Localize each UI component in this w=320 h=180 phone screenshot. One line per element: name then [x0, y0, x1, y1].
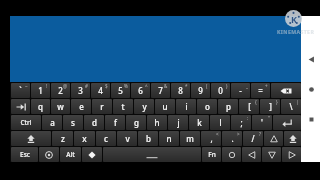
button[interactable]: a	[42, 115, 62, 130]
staticText: _	[246, 83, 248, 89]
button[interactable]: 6	[131, 83, 150, 98]
button[interactable]: l	[210, 115, 230, 130]
staticText: ,	[210, 133, 213, 144]
button[interactable]: t	[113, 99, 133, 114]
button[interactable]: 1	[31, 83, 50, 98]
button[interactable]: Arrow right	[282, 147, 301, 162]
button[interactable]: [	[239, 99, 259, 114]
button[interactable]: k	[189, 115, 209, 130]
button[interactable]: Arrow down	[262, 147, 281, 162]
staticText: ;	[240, 117, 243, 128]
staticText: Ctrl	[20, 118, 32, 127]
button[interactable]: Alt	[60, 147, 81, 162]
button[interactable]: z	[52, 131, 73, 146]
staticText: v	[125, 133, 130, 144]
button[interactable]: v	[117, 131, 137, 146]
staticText: `	[19, 85, 22, 96]
button[interactable]: ]	[260, 99, 280, 114]
staticText: )	[226, 83, 228, 89]
button[interactable]: 0	[211, 83, 230, 98]
staticText: 3	[78, 85, 83, 96]
button[interactable]: Space	[103, 147, 201, 162]
button[interactable]: w	[51, 99, 70, 114]
button[interactable]: Shift	[284, 131, 301, 146]
button[interactable]: 9	[191, 83, 210, 98]
button[interactable]: 7	[151, 83, 170, 98]
button[interactable]: Change language	[39, 147, 59, 162]
button[interactable]: Arrow left	[242, 147, 261, 162]
staticText: &	[164, 83, 168, 89]
button[interactable]: b	[138, 131, 158, 146]
staticText: 9	[198, 85, 203, 96]
button[interactable]: e	[71, 99, 91, 114]
button[interactable]: n	[159, 131, 179, 146]
staticText: [	[248, 101, 251, 112]
staticText: m	[186, 133, 194, 144]
button[interactable]: =	[251, 83, 270, 98]
staticText: ]	[269, 101, 272, 112]
staticText: h	[154, 117, 160, 128]
staticText: *	[185, 83, 188, 89]
button[interactable]: 4	[91, 83, 110, 98]
staticText: f	[114, 117, 117, 128]
staticText: p	[226, 101, 231, 112]
staticText: 8	[178, 85, 183, 96]
button[interactable]: m	[180, 131, 200, 146]
button[interactable]: '	[252, 115, 272, 130]
button[interactable]: o	[197, 99, 217, 114]
button[interactable]: j	[168, 115, 188, 130]
staticText: Alt	[66, 150, 75, 159]
button[interactable]: `	[11, 83, 30, 98]
button[interactable]: Enter	[273, 115, 301, 130]
button[interactable]: q	[31, 99, 50, 114]
staticText: K	[291, 13, 297, 25]
button[interactable]: u	[155, 99, 175, 114]
button[interactable]: p	[218, 99, 238, 114]
button[interactable]: y	[134, 99, 154, 114]
button[interactable]: Home	[305, 83, 317, 95]
button[interactable]: s	[63, 115, 83, 130]
button[interactable]: Tab	[11, 99, 30, 114]
staticText: s	[71, 117, 75, 128]
button[interactable]: r	[92, 99, 112, 114]
staticText: j	[177, 117, 180, 128]
button[interactable]: 3	[71, 83, 90, 98]
button[interactable]: 5	[111, 83, 130, 98]
button[interactable]: Search	[82, 147, 102, 162]
button[interactable]: Shift	[11, 131, 51, 146]
button[interactable]: -	[231, 83, 250, 98]
button[interactable]: d	[84, 115, 104, 130]
button[interactable]: Arrow up	[264, 131, 283, 146]
button[interactable]: c	[96, 131, 116, 146]
button[interactable]: /	[243, 131, 263, 146]
staticText: Esc	[20, 150, 30, 159]
button[interactable]: .	[222, 131, 242, 146]
staticText: |	[296, 99, 299, 105]
button[interactable]: 2	[51, 83, 70, 98]
button[interactable]: Fn	[202, 147, 221, 162]
staticText: @	[63, 83, 68, 89]
button[interactable]: x	[74, 131, 95, 146]
button[interactable]: ,	[201, 131, 221, 146]
button[interactable]: ;	[231, 115, 251, 130]
button[interactable]: h	[147, 115, 167, 130]
button[interactable]: Esc	[11, 147, 38, 162]
staticText: +	[265, 83, 268, 89]
staticText: #	[85, 83, 88, 89]
button[interactable]: Ctrl	[11, 115, 41, 130]
staticText: {	[255, 99, 257, 105]
button[interactable]: Back	[305, 53, 317, 65]
button[interactable]: Recent apps	[305, 113, 317, 125]
staticText: i	[185, 101, 188, 112]
button[interactable]: i	[176, 99, 196, 114]
staticText: 7	[158, 85, 163, 96]
button[interactable]: Settings	[222, 147, 241, 162]
button[interactable]: \	[281, 99, 301, 114]
button[interactable]: Backspace	[271, 83, 301, 98]
staticText: ?	[259, 131, 261, 137]
staticText: KINEMASTER	[277, 28, 315, 35]
staticText: Fn	[208, 150, 216, 159]
button[interactable]: g	[126, 115, 146, 130]
button[interactable]: f	[105, 115, 125, 130]
button[interactable]: 8	[171, 83, 190, 98]
